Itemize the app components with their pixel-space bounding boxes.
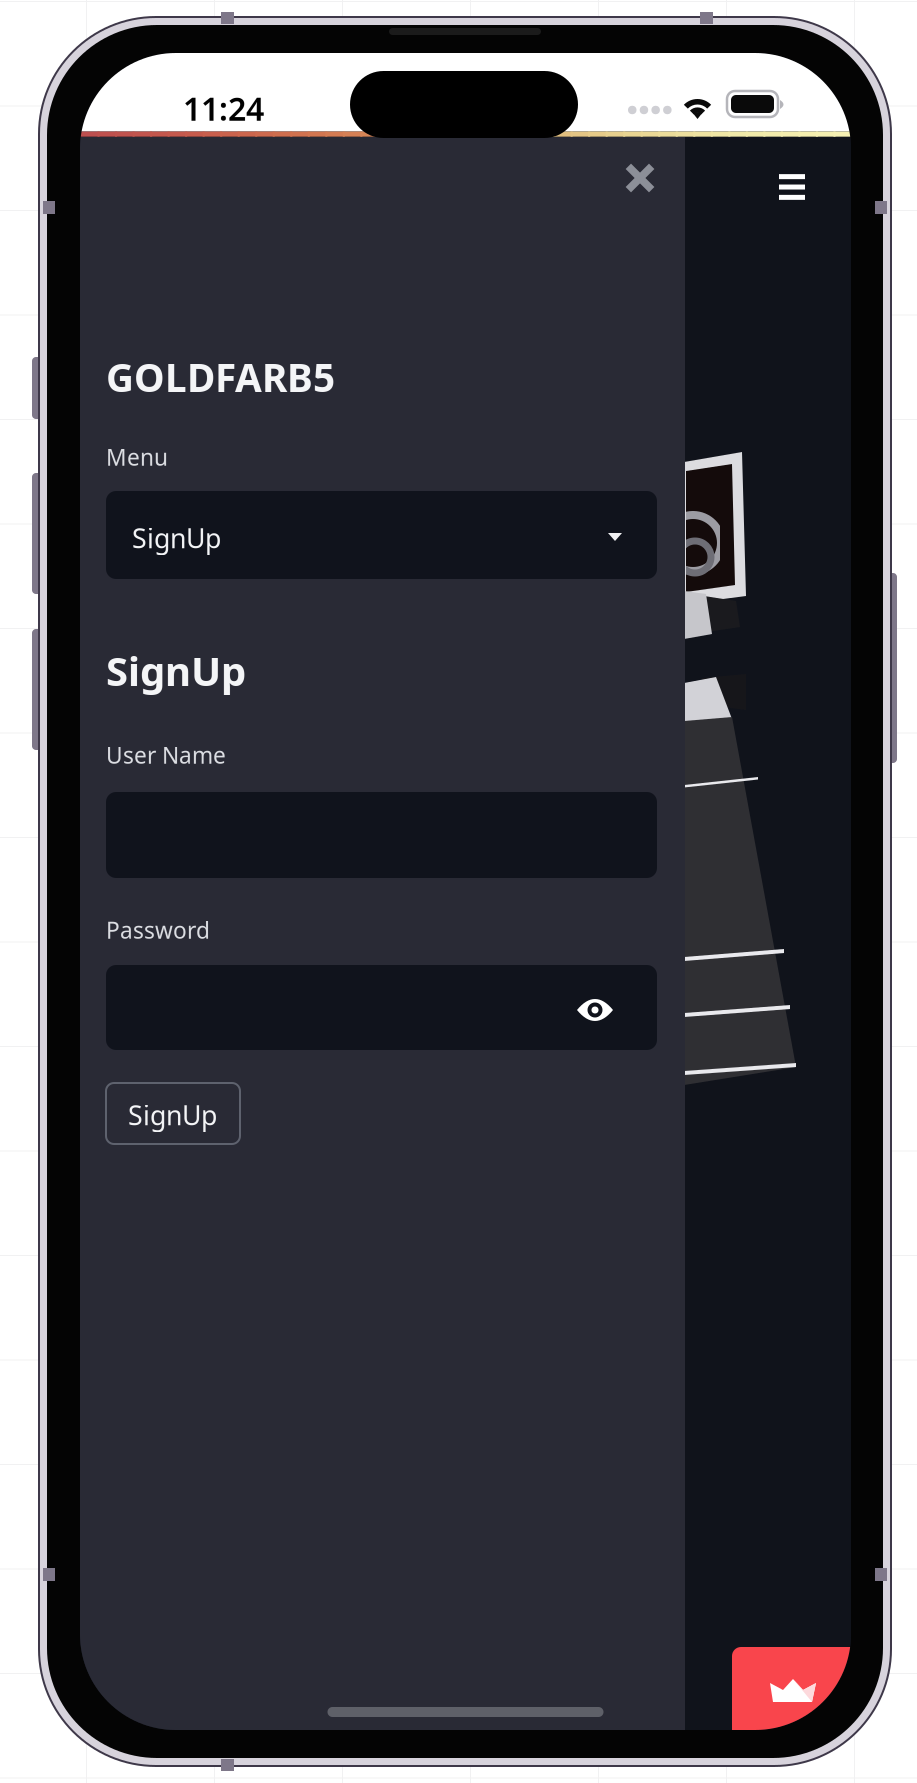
staticText: Password	[106, 915, 210, 945]
staticText: 11:24	[183, 87, 264, 129]
staticText: GOLDFARB5	[106, 351, 335, 403]
button[interactable]: Show password	[565, 990, 625, 1030]
staticText: SignUp	[132, 520, 221, 556]
button[interactable]: SignUp	[106, 491, 657, 579]
button[interactable]: Close menu	[608, 146, 672, 210]
button[interactable]: Upgrade	[732, 1647, 872, 1777]
button[interactable]: SignUp	[106, 1083, 240, 1144]
staticText: Menu	[106, 442, 168, 472]
staticText: SignUp	[128, 1097, 217, 1133]
button[interactable]: Open menu	[757, 149, 827, 225]
staticText: SignUp	[106, 644, 246, 697]
staticText: User Name	[106, 740, 226, 770]
